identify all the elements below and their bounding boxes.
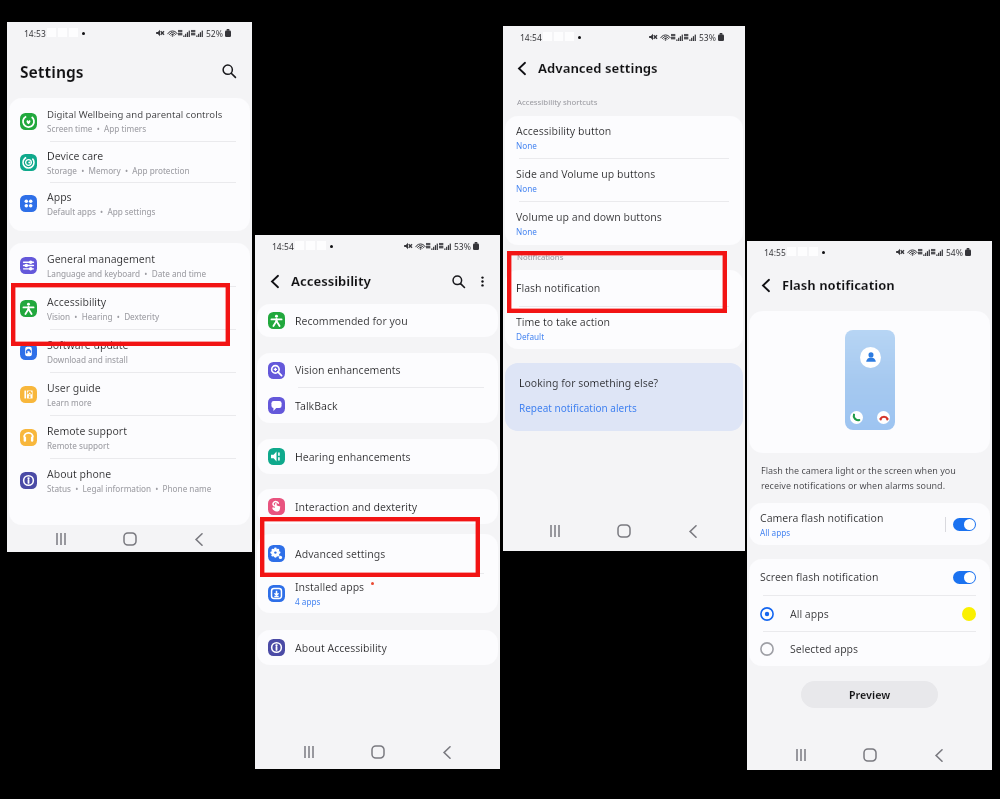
button[interactable]: Recommended for you	[257, 304, 498, 337]
button[interactable]: About Accessibility	[257, 630, 498, 665]
button[interactable]: Back	[434, 739, 460, 765]
staticText: Notifications	[517, 252, 564, 263]
button[interactable]: Recent apps	[788, 742, 814, 768]
button[interactable]: Software update	[9, 330, 250, 372]
button[interactable]: More options	[472, 271, 492, 291]
staticText: 54%	[946, 247, 963, 259]
button[interactable]: Back	[756, 275, 776, 295]
button[interactable]: Home	[857, 742, 883, 768]
staticText: Download and install	[47, 354, 128, 365]
staticText: Looking for something else?	[519, 376, 659, 390]
button[interactable]: Back	[265, 271, 285, 291]
staticText: Time to take action	[516, 315, 611, 329]
button[interactable]: Vision enhancements	[257, 353, 498, 387]
button[interactable]: Search	[447, 270, 469, 292]
button[interactable]: Installed apps	[257, 574, 498, 613]
button[interactable]: Accessibility button	[505, 116, 743, 158]
staticText: All apps	[790, 607, 962, 621]
staticText: None	[516, 183, 537, 194]
staticText: 4 apps	[295, 596, 321, 607]
staticText: Camera flash notification	[760, 511, 884, 525]
staticText: 53%	[454, 241, 471, 253]
button[interactable]: Home	[611, 518, 637, 544]
button[interactable]: User guide	[9, 373, 250, 415]
staticText: General management	[47, 252, 155, 266]
button[interactable]: Screen flash notification	[749, 559, 990, 595]
button[interactable]: Flash notification	[505, 270, 743, 306]
button[interactable]: Time to take action	[505, 307, 743, 349]
staticText: 14:55	[764, 247, 786, 259]
staticText: Settings	[20, 61, 84, 82]
staticText: Vision • Hearing • Dexterity	[47, 311, 160, 322]
staticText: 14:54	[520, 32, 542, 44]
button[interactable]: Apps	[9, 183, 250, 223]
staticText: Default apps • App settings	[47, 206, 156, 217]
button[interactable]: Back	[186, 526, 212, 552]
button[interactable]: Digital Wellbeing and parental controls	[9, 101, 250, 141]
button[interactable]: Recent apps	[542, 518, 568, 544]
button[interactable]: Back	[926, 742, 952, 768]
staticText: Status • Legal information • Phone name	[47, 483, 212, 494]
button[interactable]: Device care	[9, 142, 250, 182]
staticText: 52%	[206, 28, 223, 40]
staticText: Remote support	[47, 440, 110, 451]
staticText: Interaction and dexterity	[295, 500, 418, 514]
button[interactable]: Side and Volume up buttons	[505, 159, 743, 201]
staticText: User guide	[47, 381, 101, 395]
staticText: Flash notification	[782, 276, 895, 294]
staticText: Learn more	[47, 397, 92, 408]
staticText: Remote support	[47, 424, 127, 438]
staticText: Software update	[47, 338, 129, 352]
staticText: None	[516, 226, 537, 237]
staticText: 14:54	[272, 241, 294, 253]
staticText: 53%	[699, 32, 716, 44]
button[interactable]: Accessibility	[9, 287, 250, 329]
staticText: None	[516, 140, 537, 151]
button[interactable]: Advanced settings	[257, 534, 498, 573]
button[interactable]: Remote support	[9, 416, 250, 458]
staticText: Screen time • App timers	[47, 123, 147, 134]
button[interactable]: Repeat notification alerts	[519, 401, 637, 415]
button[interactable]: Recent apps	[48, 526, 74, 552]
button[interactable]: Search	[217, 59, 241, 83]
button[interactable]: All apps	[749, 596, 990, 631]
staticText: Accessibility	[47, 295, 107, 309]
staticText: Digital Wellbeing and parental controls	[47, 108, 223, 121]
button[interactable]: Volume up and down buttons	[505, 202, 743, 245]
staticText: Accessibility button	[516, 124, 612, 138]
staticText: Preview	[849, 688, 891, 702]
staticText: About Accessibility	[295, 641, 387, 655]
button[interactable]: Recent apps	[296, 739, 322, 765]
staticText: Device care	[47, 149, 104, 163]
button[interactable]: Back	[680, 518, 706, 544]
staticText: Side and Volume up buttons	[516, 167, 656, 181]
staticText: Advanced settings	[538, 59, 658, 77]
staticText: Advanced settings	[295, 547, 386, 561]
staticText: About phone	[47, 467, 112, 481]
staticText: Flash the camera light or the screen whe…	[761, 464, 956, 491]
button[interactable]: TalkBack	[257, 388, 498, 423]
button[interactable]: Toggle on	[953, 518, 976, 531]
staticText: 14:53	[24, 28, 46, 40]
button[interactable]: Selected apps	[749, 632, 990, 666]
button[interactable]: Home	[117, 526, 143, 552]
staticText: Hearing enhancements	[295, 450, 411, 464]
staticText: Recommended for you	[295, 314, 408, 328]
button[interactable]: Preview	[801, 681, 938, 708]
staticText: Storage • Memory • App protection	[47, 165, 190, 176]
staticText: Accessibility	[291, 272, 372, 290]
staticText: Selected apps	[790, 642, 976, 656]
staticText: Accessibility shortcuts	[517, 97, 598, 108]
button[interactable]: Camera flash notification	[749, 503, 990, 545]
button[interactable]: Back	[512, 58, 532, 78]
staticText: Apps	[47, 190, 72, 204]
button[interactable]: Hearing enhancements	[257, 439, 498, 474]
button[interactable]: General management	[9, 244, 250, 286]
button[interactable]: About phone	[9, 459, 250, 501]
button[interactable]: Toggle on	[953, 571, 976, 584]
staticText: Screen flash notification	[760, 570, 953, 584]
staticText: TalkBack	[295, 399, 338, 413]
button[interactable]: Interaction and dexterity	[257, 489, 498, 524]
staticText: All apps	[760, 527, 791, 538]
button[interactable]: Home	[365, 739, 391, 765]
